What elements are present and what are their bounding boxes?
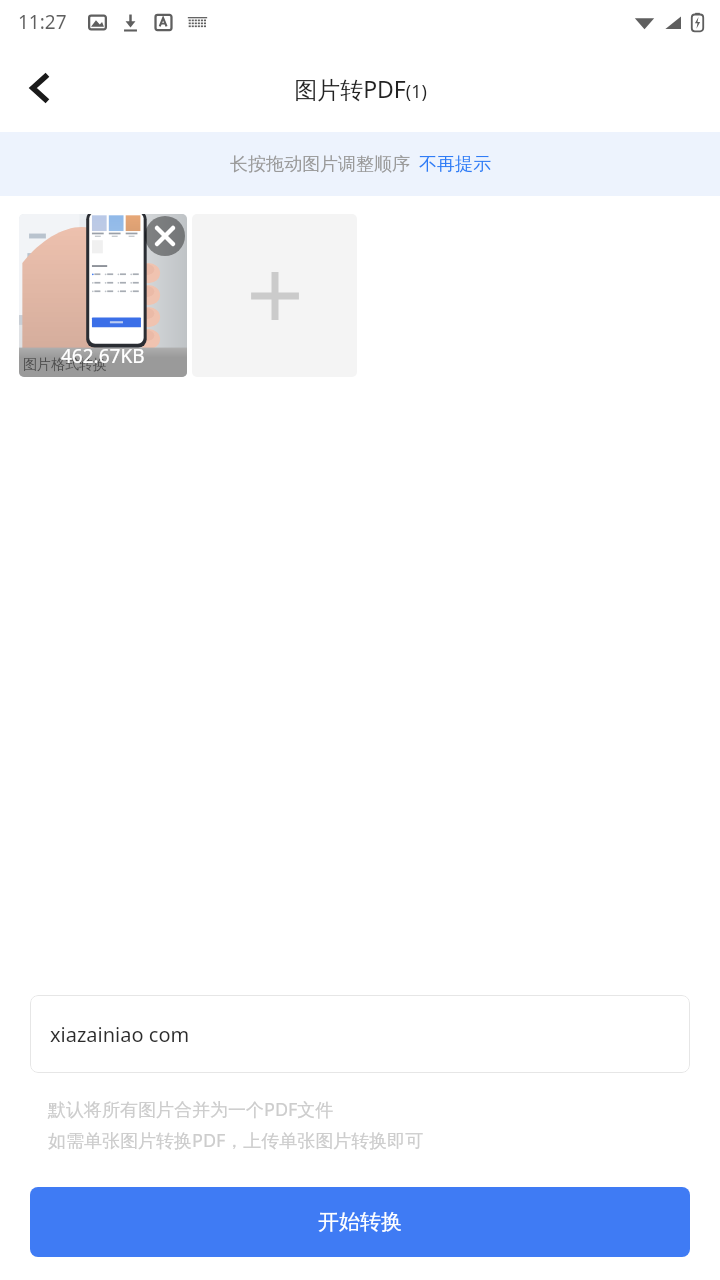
staticText: 不再提示: [419, 153, 491, 176]
staticText: 图片格式转换: [23, 356, 107, 374]
staticText: 开始转换: [318, 1209, 402, 1235]
button[interactable]: Add image: [192, 214, 357, 377]
button[interactable]: xiazainiao com: [30, 995, 690, 1073]
button[interactable]: Remove image: [145, 216, 185, 256]
staticText: 如需单张图片转换PDF，上传单张图片转换即可: [48, 1128, 424, 1153]
button[interactable]: Back: [8, 56, 72, 120]
staticText: 默认将所有图片合并为一个PDF文件: [48, 1097, 334, 1122]
button[interactable]: 不再提示: [419, 153, 491, 176]
staticText: 长按拖动图片调整顺序: [230, 153, 410, 176]
staticText: xiazainiao com: [50, 1021, 190, 1048]
staticText: 图片转PDF(1): [294, 73, 427, 104]
button[interactable]: 图片格式转换: [19, 214, 187, 377]
staticText: 462.67KB: [61, 343, 145, 369]
staticText: 11:27: [18, 9, 67, 35]
button[interactable]: 开始转换: [30, 1187, 690, 1257]
